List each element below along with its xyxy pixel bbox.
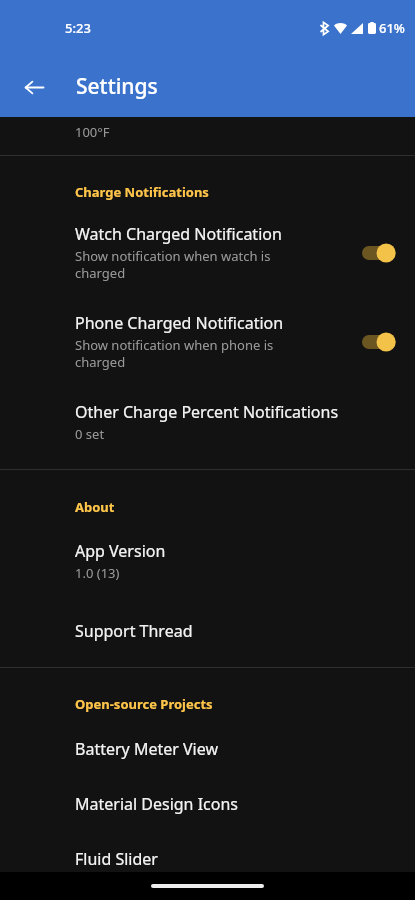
staticText: 100°F (75, 123, 110, 141)
staticText: About (75, 498, 415, 516)
staticText: App Version (75, 540, 166, 562)
staticText: 0 set (75, 425, 105, 443)
button[interactable]: Material Design Icons (0, 760, 415, 815)
staticText: Settings (76, 72, 158, 101)
staticText: Support Thread (75, 620, 193, 642)
button[interactable]: Support Thread (0, 596, 415, 667)
button[interactable]: Watch Charged Notification (0, 201, 415, 292)
staticText: Charge Notifications (75, 183, 415, 201)
button[interactable]: Watch Charged Notification (355, 237, 401, 269)
button[interactable]: Fluid Slider (0, 815, 415, 870)
staticText: Show notification when phone is charged (75, 336, 274, 371)
staticText: Other Charge Percent Notifications (75, 401, 339, 423)
staticText: Battery Meter View (75, 738, 218, 760)
button[interactable]: Phone Charged Notification (0, 292, 415, 381)
staticText: 5:23 (65, 19, 91, 37)
staticText: Material Design Icons (75, 793, 239, 815)
button[interactable]: Other Charge Percent Notifications (0, 381, 415, 469)
staticText: Open-source Projects (75, 695, 415, 713)
button[interactable]: App Version (0, 516, 415, 596)
staticText: Show notification when watch is charged (75, 247, 271, 282)
staticText: 61% (379, 19, 405, 37)
staticText: Watch Charged Notification (75, 223, 282, 245)
staticText: 1.0 (13) (75, 564, 120, 582)
staticText: Phone Charged Notification (75, 312, 284, 334)
button[interactable]: Back (12, 65, 56, 109)
button[interactable]: Phone Charged Notification (355, 326, 401, 358)
staticText: Fluid Slider (75, 848, 158, 870)
button[interactable]: Battery Meter View (0, 713, 415, 760)
